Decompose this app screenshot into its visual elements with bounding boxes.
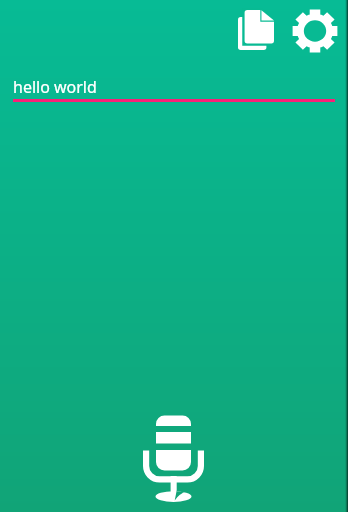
staticText: hello world [13,76,97,98]
button[interactable]: hello world [13,76,335,102]
button[interactable]: Record [141,412,207,506]
button[interactable]: Copy [228,2,284,58]
button[interactable]: Settings [288,4,341,57]
